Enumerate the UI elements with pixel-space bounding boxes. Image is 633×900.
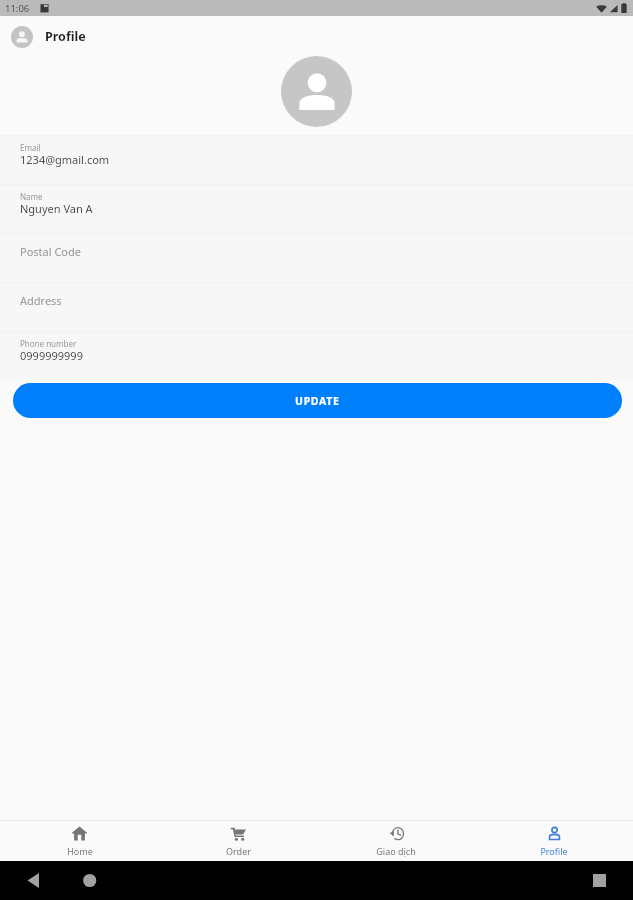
staticText: 11:06 [5,2,30,15]
button[interactable]: Order [159,821,317,861]
staticText: Address [20,293,62,308]
button[interactable]: Name [0,184,633,233]
button[interactable]: Email [0,135,633,184]
staticText: Order [226,845,251,857]
staticText: Profile [45,28,86,45]
staticText: Nguyen Van A [20,201,93,216]
button[interactable]: Giao dịch [317,821,475,861]
staticText: UPDATE [295,394,340,408]
staticText: Phone number [20,338,77,349]
button[interactable]: UPDATE [13,383,622,418]
staticText: Giao dịch [376,845,416,857]
staticText: 1234@gmail.com [20,152,110,167]
button[interactable]: Phone number [0,331,633,380]
button[interactable]: Account [11,26,33,48]
staticText: 0999999999 [20,348,83,363]
staticText: Profile [540,845,568,857]
staticText: Name [20,191,43,202]
staticText: Home [67,845,93,857]
staticText: Email [20,142,41,153]
button[interactable]: Profile photo [281,56,352,127]
button[interactable]: Profile [475,821,633,861]
button[interactable]: Postal Code [0,233,633,282]
staticText: Postal Code [20,244,81,259]
button[interactable]: Address [0,282,633,331]
button[interactable]: Home [0,821,159,861]
